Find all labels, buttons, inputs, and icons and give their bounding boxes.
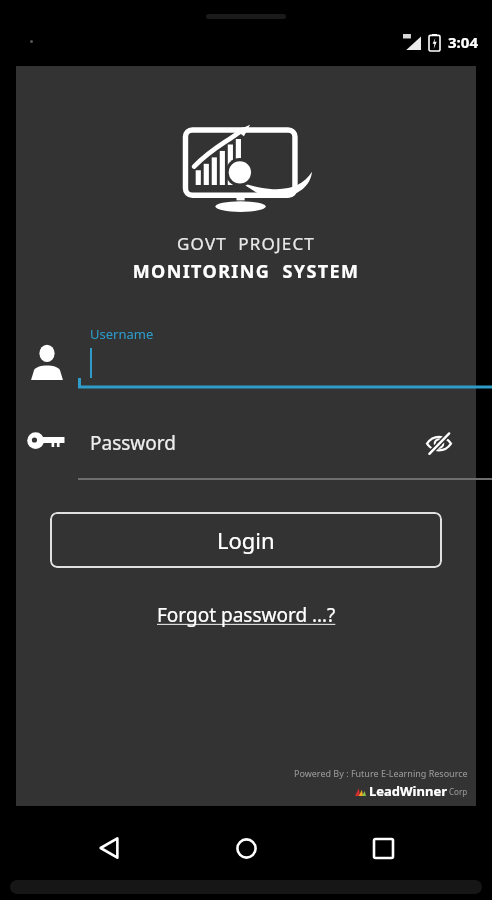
button[interactable]: Username xyxy=(16,322,476,402)
button[interactable]: Forgot password …? xyxy=(149,596,344,634)
staticText: MONITORING SYSTEM xyxy=(16,259,476,284)
button[interactable]: Home xyxy=(218,820,274,876)
staticText: 3:04 xyxy=(448,32,478,52)
button[interactable]: Recent apps xyxy=(355,820,411,876)
button[interactable]: Show password xyxy=(424,428,454,458)
staticText: Password xyxy=(90,430,176,456)
staticText: GOVT PROJECT xyxy=(16,232,476,255)
staticText: Forgot password …? xyxy=(157,602,336,628)
staticText: Powered By : Future E-Learning Resource xyxy=(294,767,468,779)
staticText: Username xyxy=(90,325,154,343)
staticText: Corp xyxy=(449,786,468,797)
staticText: Login xyxy=(217,525,275,555)
button[interactable]: Login xyxy=(50,512,442,568)
staticText: LeadWinner xyxy=(369,782,447,800)
button[interactable]: Password xyxy=(16,418,476,480)
button[interactable]: Back xyxy=(81,820,137,876)
